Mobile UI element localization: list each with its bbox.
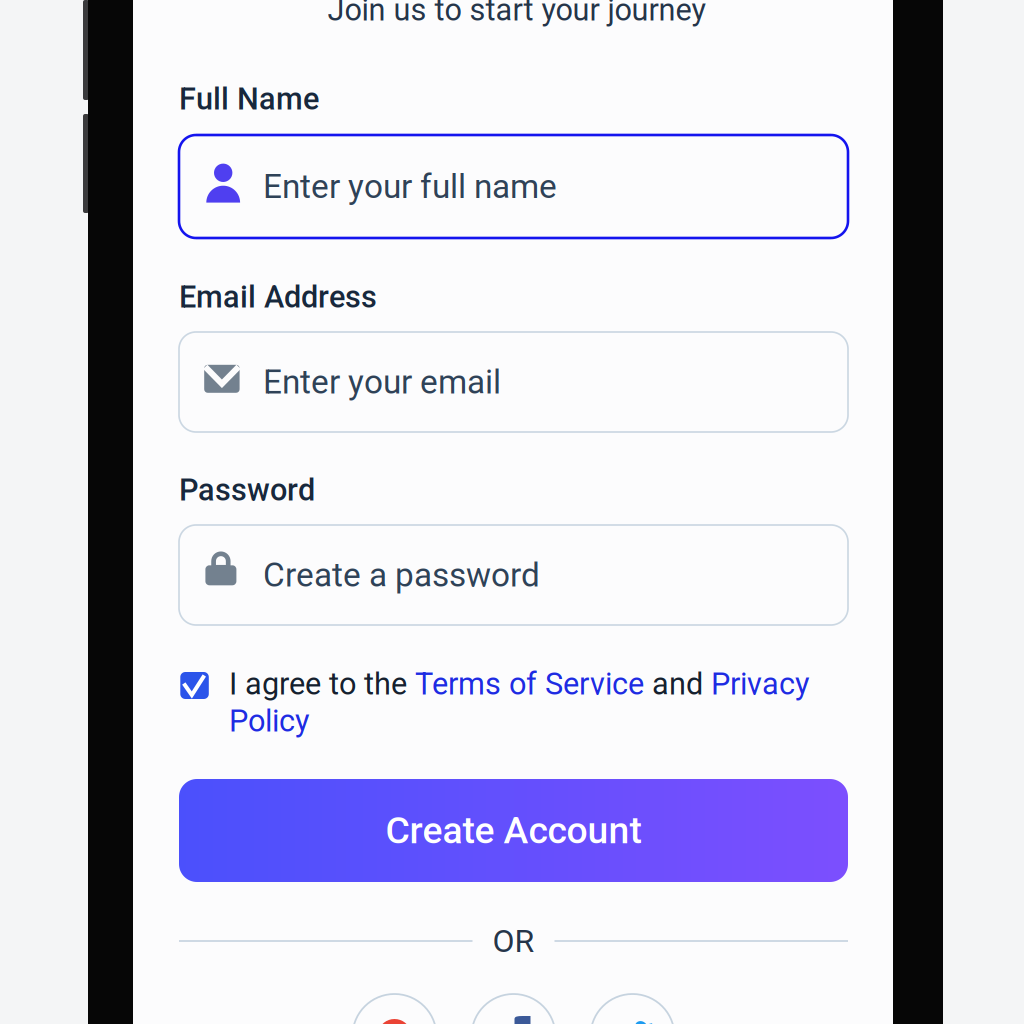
button[interactable]: Create Account [179, 779, 848, 882]
staticText: Full Name [179, 81, 319, 117]
button[interactable]: Sign up with Facebook [471, 994, 555, 1024]
staticText: Email Address [179, 279, 377, 315]
staticText: Password [179, 472, 315, 508]
button[interactable]: Sign up with Google [352, 994, 436, 1024]
button[interactable]: I agree to the [179, 671, 848, 751]
staticText: I agree to the [229, 666, 415, 702]
staticText: Create a password [263, 555, 540, 595]
button[interactable]: Enter your full name [179, 135, 848, 238]
staticText: Terms of Service [415, 666, 644, 702]
staticText: and [644, 666, 711, 702]
staticText: Privacy [711, 666, 810, 702]
button[interactable]: Sign up with Twitter [590, 994, 674, 1024]
button[interactable]: Enter your email [179, 332, 848, 432]
staticText: Enter your email [263, 362, 501, 402]
staticText: Enter your full name [263, 167, 557, 206]
staticText: Policy [229, 703, 310, 739]
staticText: OR [492, 922, 534, 960]
button[interactable]: Create a password [179, 525, 848, 625]
staticText: Join us to start your journey [327, 0, 706, 28]
staticText: Create Account [385, 809, 641, 852]
